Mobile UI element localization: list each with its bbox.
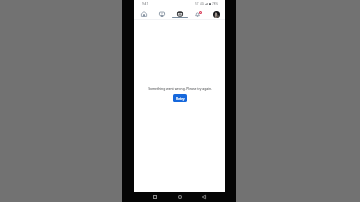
button[interactable]: Marketplace: [171, 8, 189, 19]
button[interactable]: Recents: [151, 193, 159, 201]
button[interactable]: Profile: [207, 8, 225, 19]
button[interactable]: Home: [176, 193, 184, 201]
staticText: 4G: [200, 2, 204, 6]
staticText: Retry: [176, 96, 185, 101]
button[interactable]: Video: [153, 8, 171, 19]
button[interactable]: Home: [134, 8, 153, 19]
staticText: 78%: [212, 2, 218, 6]
staticText: 57: [195, 2, 199, 6]
button[interactable]: Notifications: [189, 8, 207, 19]
staticText: 9:41: [142, 2, 149, 6]
button[interactable]: Retry: [173, 94, 187, 102]
button[interactable]: Back: [200, 193, 208, 201]
staticText: Something went wrong. Please try again.: [148, 86, 212, 91]
